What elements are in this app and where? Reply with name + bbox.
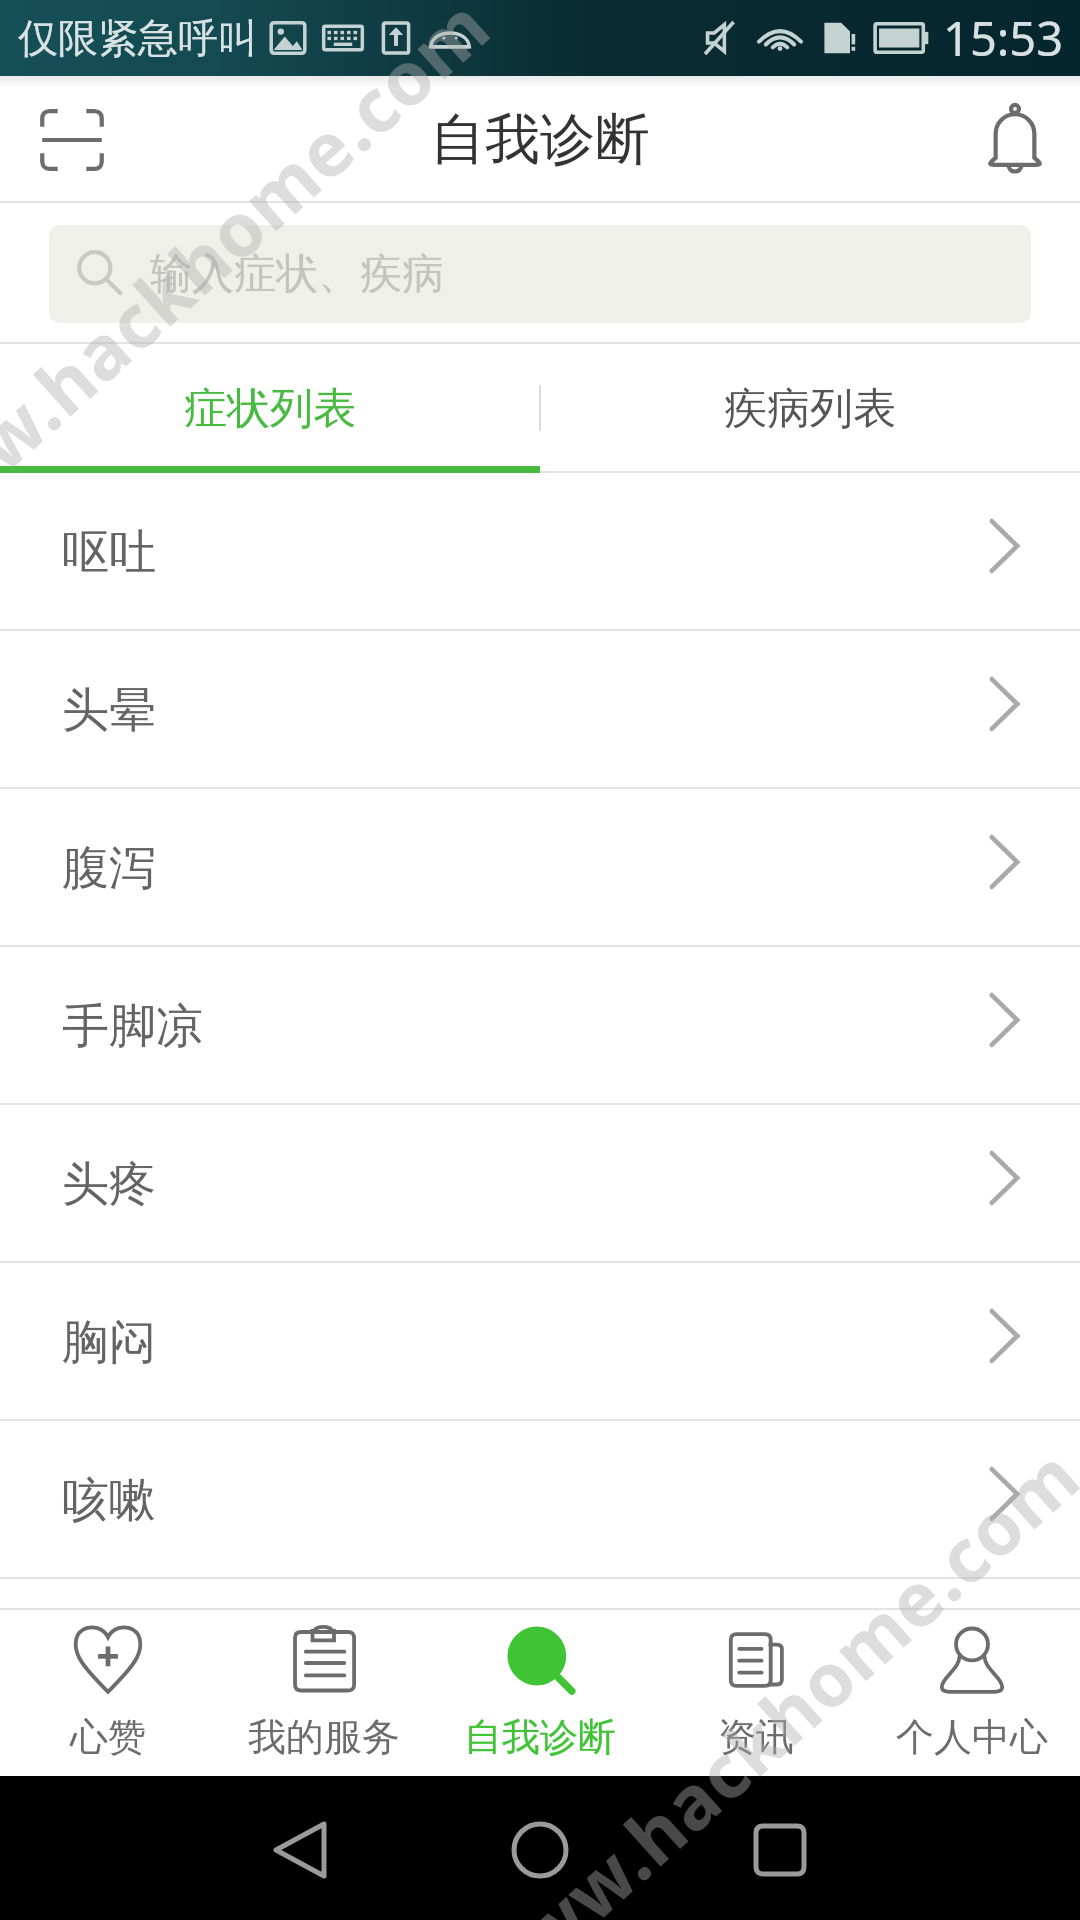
button[interactable]: 我的服务: [216, 1608, 432, 1776]
button[interactable]: 呕吐: [0, 473, 1080, 631]
button[interactable]: Recent apps: [720, 1802, 840, 1898]
button[interactable]: Home: [480, 1802, 600, 1898]
staticText: 头疼: [62, 1155, 156, 1214]
button[interactable]: 资讯: [648, 1608, 864, 1776]
staticText: 我的服务: [248, 1713, 400, 1761]
staticText: www.hackhome.com: [446, 1425, 1080, 1920]
staticText: 呕吐: [62, 523, 156, 582]
staticText: 腹泻: [62, 839, 156, 898]
staticText: 输入症状、疾病: [150, 248, 444, 301]
button[interactable]: Scan QR code: [40, 109, 104, 171]
button[interactable]: 胸闷: [0, 1263, 1080, 1421]
button[interactable]: 症状列表: [0, 344, 540, 473]
staticText: 自我诊断: [430, 105, 650, 174]
button[interactable]: 疾病列表: [540, 344, 1080, 473]
button[interactable]: 头疼: [0, 1105, 1080, 1263]
staticText: 个人中心: [896, 1713, 1048, 1761]
button[interactable]: 自我诊断: [432, 1608, 648, 1776]
button[interactable]: 个人中心: [864, 1608, 1080, 1776]
button[interactable]: Back: [240, 1802, 360, 1898]
button[interactable]: 输入症状、疾病: [49, 225, 1031, 323]
staticText: 头晕: [62, 681, 156, 740]
staticText: 胸闷: [62, 1313, 156, 1372]
staticText: 疾病列表: [724, 382, 896, 436]
staticText: 症状列表: [184, 382, 356, 436]
button[interactable]: 头晕: [0, 631, 1080, 789]
button[interactable]: 咳嗽: [0, 1421, 1080, 1579]
button[interactable]: 腹泻: [0, 789, 1080, 947]
staticText: 15:53: [943, 6, 1064, 70]
staticText: 仅限紧急呼叫: [18, 13, 258, 63]
staticText: 心赞: [70, 1713, 146, 1761]
staticText: 咳嗽: [62, 1471, 156, 1530]
staticText: www.hackhome.com: [0, 0, 510, 578]
button[interactable]: Notifications: [975, 96, 1055, 176]
staticText: 资讯: [718, 1713, 794, 1761]
staticText: 自我诊断: [464, 1713, 616, 1761]
button[interactable]: 手脚凉: [0, 947, 1080, 1105]
button[interactable]: 心赞: [0, 1608, 216, 1776]
staticText: 手脚凉: [62, 997, 203, 1056]
